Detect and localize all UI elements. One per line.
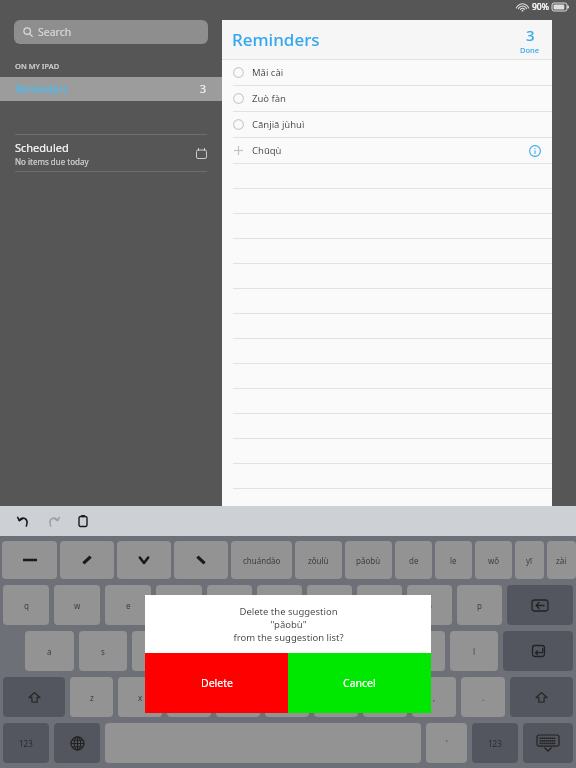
button[interactable]: globe [54, 723, 100, 763]
staticText: p [477, 600, 482, 611]
button[interactable]: z [70, 677, 113, 717]
button[interactable]: j [344, 631, 392, 671]
button[interactable]: 123 [3, 723, 49, 763]
staticText: Scheduled [15, 140, 69, 155]
staticText: yī [526, 555, 533, 566]
button[interactable]: return [503, 631, 573, 671]
button[interactable]: Cancel [288, 653, 431, 713]
button[interactable]: e [105, 585, 151, 625]
staticText: Delete the suggestion [239, 605, 338, 618]
staticText: pǎobù [356, 555, 381, 566]
button[interactable]: a [25, 631, 74, 671]
staticText: zǒulù [308, 555, 329, 566]
button[interactable]: macron [2, 541, 57, 579]
button[interactable]: g [238, 631, 286, 671]
staticText: Done [520, 45, 540, 55]
button[interactable]: grave [174, 541, 228, 579]
staticText: le [450, 555, 457, 566]
staticText: chuándào [243, 555, 281, 566]
button[interactable]: v [216, 677, 260, 717]
button[interactable]: x [118, 677, 162, 717]
button[interactable]: dismiss [523, 723, 573, 763]
button[interactable]: y [257, 585, 302, 625]
button[interactable]: r [156, 585, 202, 625]
button[interactable]: acute [60, 541, 114, 579]
button[interactable]: k [397, 631, 445, 671]
staticText: Cānjiā jùhuì [252, 118, 305, 131]
button[interactable]: zài [547, 541, 576, 579]
button[interactable]: q [3, 585, 49, 625]
button[interactable]: u [307, 585, 352, 625]
button[interactable]: yī [515, 541, 544, 579]
button[interactable]: Zuò fàn [222, 86, 552, 111]
button[interactable]: back [507, 585, 573, 625]
other: Scheduled [196, 148, 207, 159]
staticText: w [74, 600, 81, 611]
button[interactable]: Paste [72, 510, 94, 532]
button[interactable]: zǒulù [295, 541, 342, 579]
staticText: 3 [526, 25, 535, 45]
button[interactable]: m [363, 677, 407, 717]
button[interactable]: Cānjiā jùhuì [222, 112, 552, 137]
staticText: l [473, 646, 476, 657]
button[interactable]: Mǎi cài [222, 60, 552, 85]
staticText: f [208, 646, 211, 657]
staticText: s [101, 646, 105, 657]
button[interactable]: o [407, 585, 452, 625]
staticText: 123 [488, 738, 502, 749]
staticText: from the suggestion list? [233, 631, 344, 644]
button[interactable]: l [450, 631, 498, 671]
button[interactable]: Redo [42, 510, 64, 532]
button[interactable]: caron [117, 541, 171, 579]
button[interactable]: chuándào [231, 541, 292, 579]
button[interactable]: Undo [12, 510, 34, 532]
button[interactable]: le [435, 541, 472, 579]
button[interactable]: n [314, 677, 358, 717]
button[interactable]: Delete [145, 653, 288, 713]
button[interactable]: shift [3, 677, 65, 717]
staticText: u [327, 600, 332, 611]
button[interactable]: Add [222, 138, 552, 163]
button[interactable]: f [185, 631, 233, 671]
button[interactable]: wǒ [475, 541, 512, 579]
staticText: j [367, 646, 370, 657]
button[interactable]: p [457, 585, 502, 625]
staticText: 3 [200, 82, 207, 96]
button[interactable]: h [291, 631, 339, 671]
button[interactable]: de [395, 541, 432, 579]
staticText: d [154, 646, 159, 657]
staticText: y [277, 600, 282, 611]
button[interactable]: b [265, 677, 309, 717]
staticText: Search [38, 25, 72, 39]
button[interactable]: i [357, 585, 402, 625]
staticText: ON MY IPAD [15, 61, 60, 71]
button[interactable]: , [412, 677, 456, 717]
staticText: z [90, 692, 94, 703]
button[interactable]: s [79, 631, 127, 671]
button[interactable]: w [54, 585, 100, 625]
button[interactable]: t [207, 585, 252, 625]
button[interactable]: Search [14, 20, 208, 44]
staticText: Reminders [15, 82, 69, 96]
staticText: 90% [532, 1, 549, 13]
staticText: x [138, 692, 143, 703]
button[interactable]: d [132, 631, 180, 671]
staticText: de [409, 555, 419, 566]
staticText: e [126, 600, 131, 611]
button[interactable]: Reminders [0, 77, 222, 101]
button[interactable]: shift [510, 677, 573, 717]
staticText: o [427, 600, 432, 611]
button[interactable]: Scheduled [0, 135, 222, 171]
other: Details [529, 145, 541, 157]
button[interactable]: pǎobù [345, 541, 392, 579]
button[interactable]: 123 [472, 723, 518, 763]
button[interactable]: c [167, 677, 211, 717]
